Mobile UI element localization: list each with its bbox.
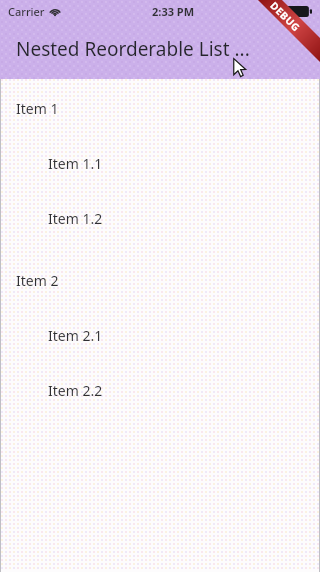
staticText: Item 1	[16, 99, 59, 118]
button[interactable]: Item 2	[0, 228, 320, 290]
staticText: 2:33 PM	[152, 4, 195, 19]
staticText: Carrier	[8, 4, 45, 19]
staticText: Item 1.2	[48, 209, 103, 228]
other: Pointer	[233, 58, 247, 78]
staticText: Item 1.1	[48, 154, 103, 173]
button[interactable]: Item 2.2	[0, 345, 320, 400]
button[interactable]: Item 2.1	[0, 290, 320, 345]
staticText: Nested Reorderable List ...	[16, 36, 250, 62]
button[interactable]: Item 1	[0, 79, 320, 118]
staticText: Item 2	[16, 271, 59, 290]
staticText: Item 2.1	[48, 326, 103, 345]
button[interactable]: Item 1.2	[0, 173, 320, 228]
button[interactable]: Item 1.1	[0, 118, 320, 173]
staticText: Item 2.2	[48, 381, 103, 400]
staticText: DEBUG	[267, 0, 303, 34]
